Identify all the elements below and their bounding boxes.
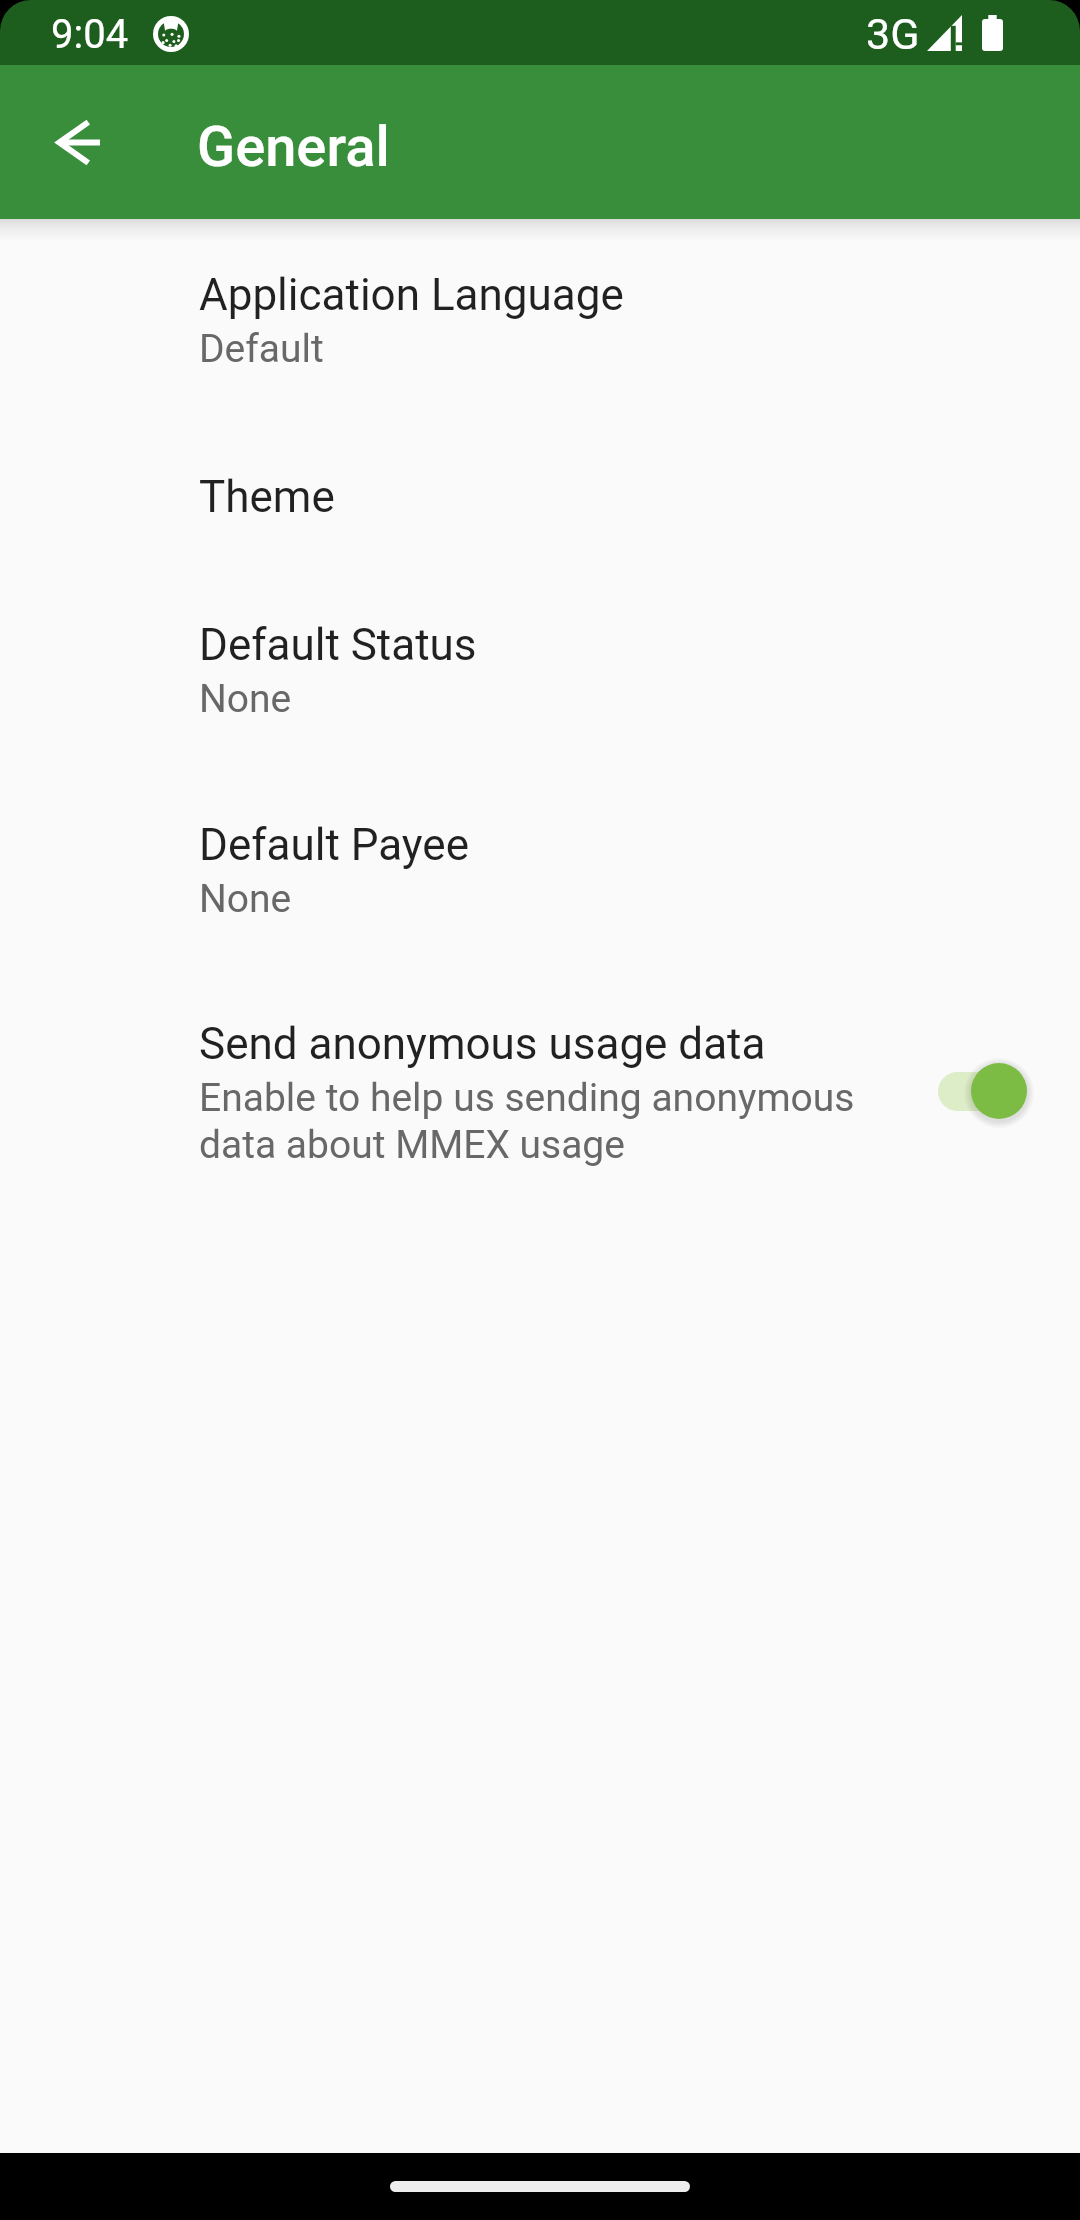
staticText: Default Status [199, 619, 477, 671]
button[interactable]: Default Payee [0, 819, 1080, 922]
staticText: 9:04 [51, 11, 129, 58]
staticText: Application Language [199, 269, 624, 321]
button[interactable]: Navigate up [29, 94, 125, 190]
button[interactable]: Send anonymous usage data toggle [938, 1045, 1045, 1141]
button[interactable]: Send anonymous usage data [0, 1018, 1080, 1168]
button[interactable]: Theme [0, 471, 1080, 523]
staticText: Theme [199, 471, 335, 523]
staticText: 3G [866, 9, 920, 59]
staticText: Default Payee [199, 819, 470, 871]
staticText: General [197, 114, 390, 180]
staticText: Send anonymous usage data [199, 1018, 766, 1070]
staticText: None [199, 876, 292, 922]
button[interactable]: Default Status [0, 619, 1080, 722]
button[interactable]: Application Language [0, 269, 1080, 372]
staticText: Enable to help us sending anonymous data… [199, 1075, 918, 1168]
staticText: None [199, 676, 292, 722]
staticText: Default [199, 326, 324, 372]
